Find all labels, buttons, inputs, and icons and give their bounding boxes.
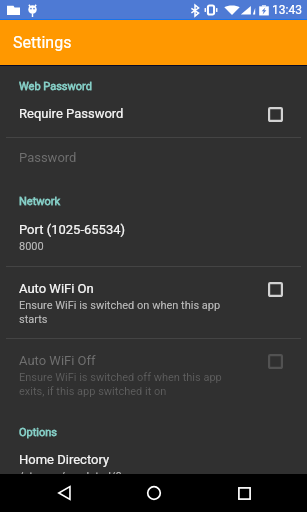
button[interactable]: Back: [41, 474, 87, 512]
button[interactable]: Auto WiFi Off: [0, 353, 307, 398]
staticText: Port (1025-65534): [19, 222, 126, 237]
button[interactable]: Home Directory: [0, 452, 307, 483]
button[interactable]: Recent apps: [221, 474, 267, 512]
button[interactable]: Port (1025-65534): [0, 222, 307, 253]
staticText: 8000: [19, 240, 44, 253]
button[interactable]: Password: [0, 150, 307, 165]
button[interactable]: Home: [131, 474, 177, 512]
staticText: Network: [19, 195, 61, 208]
staticText: Options: [19, 426, 58, 439]
staticText: Ensure WiFi is switched off when this ap…: [19, 371, 229, 398]
staticText: Auto WiFi On: [19, 281, 94, 296]
staticText: Web Password: [19, 80, 92, 93]
button[interactable]: Settings: [0, 20, 307, 65]
staticText: 13:43: [272, 3, 302, 17]
staticText: Password: [19, 150, 77, 165]
staticText: Home Directory: [19, 452, 110, 467]
staticText: Auto WiFi Off: [19, 353, 96, 368]
staticText: Settings: [13, 33, 72, 52]
button[interactable]: Auto WiFi On: [0, 281, 307, 326]
button[interactable]: Require Password: [0, 106, 307, 121]
staticText: /storage/emulated/0: [19, 470, 122, 483]
staticText: Require Password: [19, 106, 124, 121]
staticText: Ensure WiFi is switched on when this app…: [19, 299, 229, 326]
